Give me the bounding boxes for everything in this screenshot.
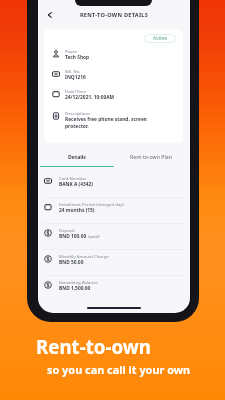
staticText: 24/12/2021, 10:00AM — [65, 94, 115, 101]
staticText: Monthly Amount Charge — [59, 253, 109, 259]
staticText: BND 1,500.00 — [59, 285, 91, 292]
staticText: INQ1216 — [65, 74, 86, 81]
staticText: so you can call it your own — [47, 362, 191, 377]
staticText: 24 months (15) — [59, 207, 95, 214]
staticText: Deposit — [59, 227, 75, 233]
staticText: Descriptions — [65, 110, 91, 116]
staticText: Card Number — [59, 175, 87, 181]
staticText: Instalment Period (charged day) — [59, 201, 124, 207]
staticText: BND 100.00 — [59, 233, 87, 240]
button[interactable]: Active — [144, 34, 176, 43]
staticText: Active — [153, 35, 167, 42]
staticText: Tech Shop — [65, 54, 90, 61]
staticText: Receives free phone stand, screen protec… — [65, 116, 147, 130]
staticText: BANK A (4342) — [59, 181, 93, 188]
button[interactable]: Details — [40, 153, 114, 167]
staticText: RENT-TO-OWN DETAILS — [54, 11, 174, 19]
button[interactable]: Back — [42, 7, 58, 23]
staticText: Payee — [65, 48, 78, 54]
staticText: Remaining Balance — [59, 279, 98, 285]
staticText: BND 50.00 — [59, 259, 84, 266]
staticText: Rent-to-own Plan — [130, 153, 172, 160]
button[interactable]: Rent-to-own Plan — [114, 153, 188, 167]
staticText: (paid) — [87, 233, 100, 239]
staticText: Bill. No. — [65, 68, 81, 74]
staticText: Details — [68, 153, 86, 160]
staticText: Date/Time — [65, 88, 87, 94]
staticText: Rent-to-own — [36, 334, 151, 359]
